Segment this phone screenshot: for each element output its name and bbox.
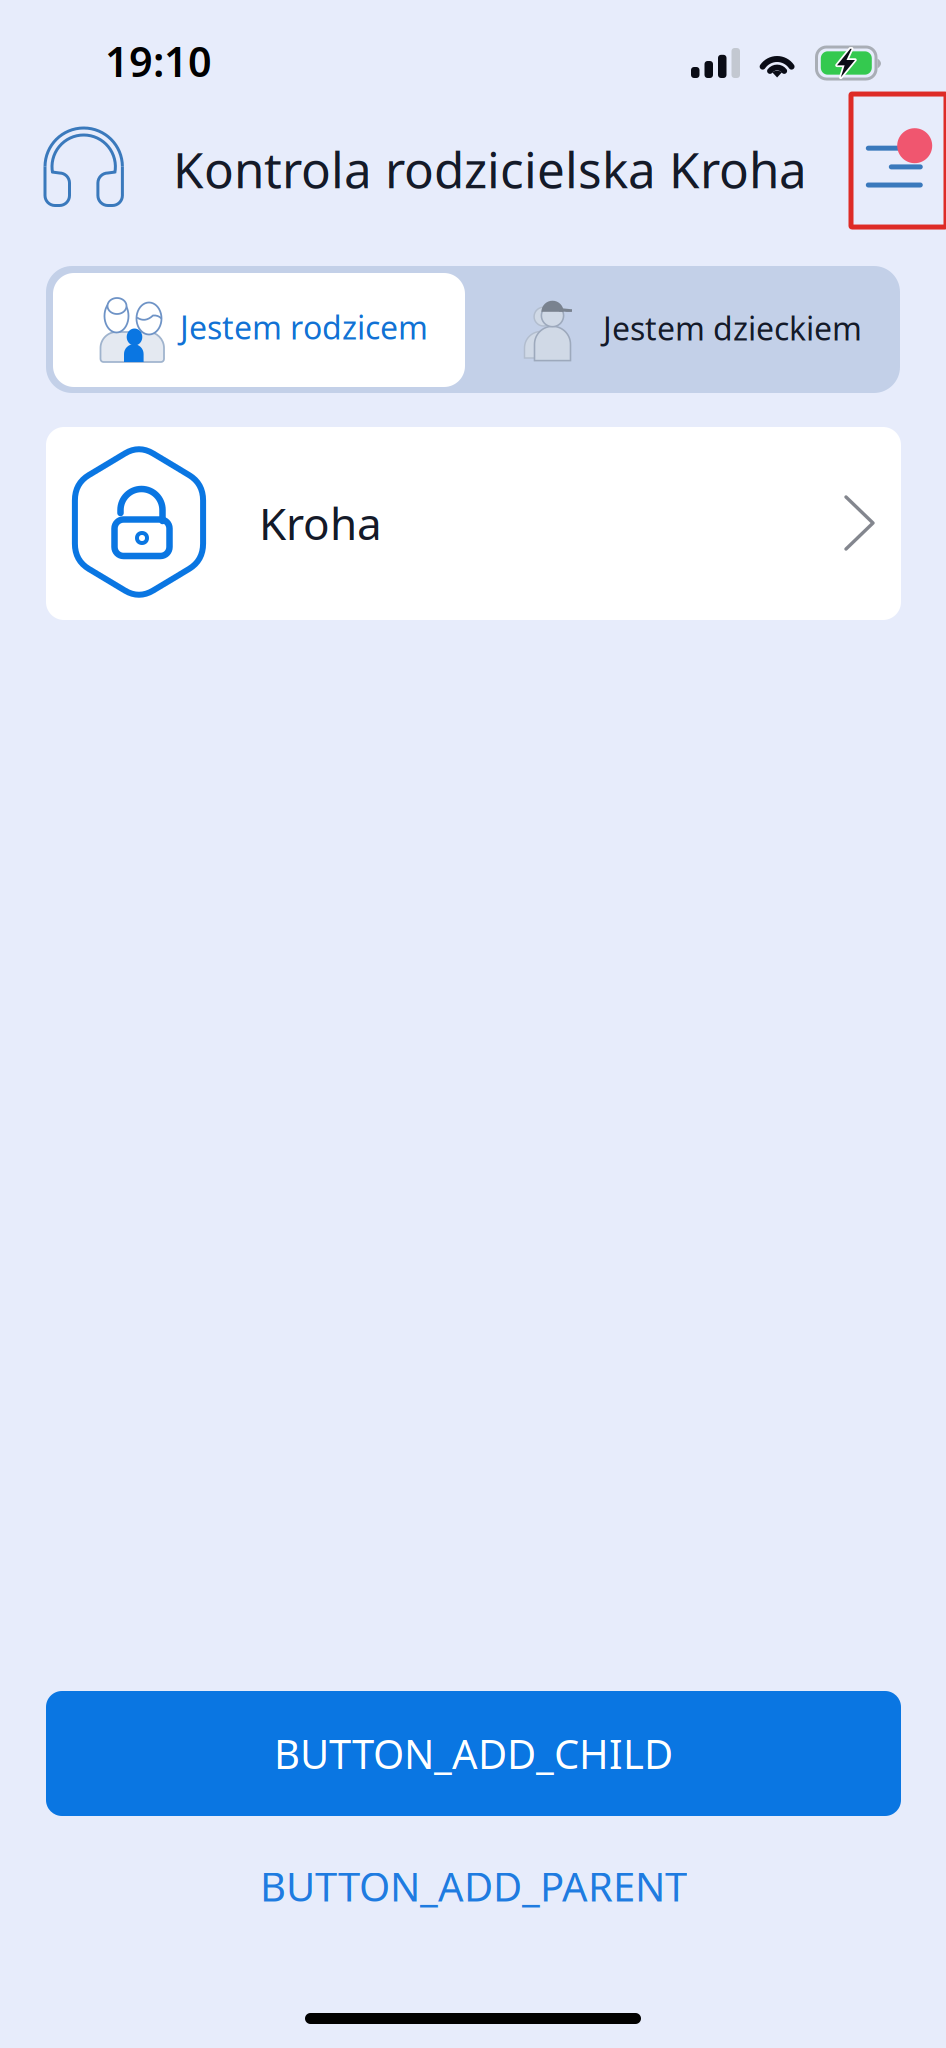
button[interactable]: Kroha xyxy=(46,427,901,620)
staticText: Jestem rodzicem xyxy=(180,306,428,348)
staticText: BUTTON_ADD_CHILD xyxy=(274,1727,673,1780)
button[interactable]: BUTTON_ADD_CHILD xyxy=(46,1691,901,1816)
staticText: BUTTON_ADD_PARENT xyxy=(260,1859,687,1912)
button[interactable]: Jestem dzieckiem xyxy=(465,273,893,387)
staticText: Kroha xyxy=(259,494,382,552)
button[interactable]: Menu xyxy=(851,94,946,227)
button[interactable]: BUTTON_ADD_PARENT xyxy=(46,1840,901,1932)
staticText: 19:10 xyxy=(105,34,212,88)
staticText: Jestem dzieckiem xyxy=(603,307,862,349)
staticText: Kontrola rodzicielska Kroha xyxy=(173,136,807,202)
button[interactable]: Jestem rodzicem xyxy=(53,273,465,387)
